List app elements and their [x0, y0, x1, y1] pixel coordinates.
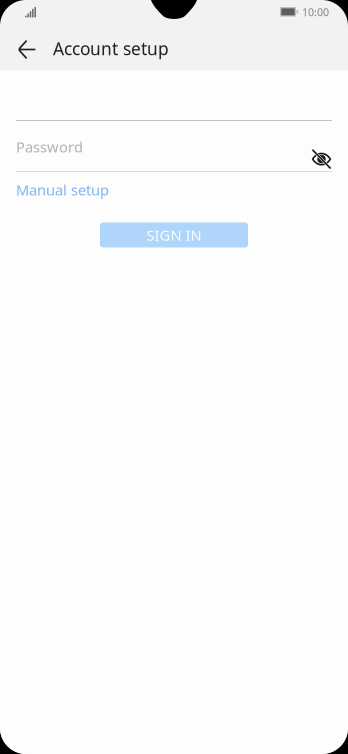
- staticText: 10:00: [302, 5, 329, 19]
- button[interactable]: Manual setup: [16, 175, 109, 204]
- staticText: SIGN IN: [146, 225, 201, 245]
- button[interactable]: Back: [9, 24, 45, 70]
- button[interactable]: SIGN IN: [100, 222, 248, 247]
- staticText: Password: [16, 137, 83, 156]
- staticText: Account setup: [53, 37, 169, 60]
- staticText: Manual setup: [16, 180, 109, 199]
- button[interactable]: Show password: [303, 121, 332, 171]
